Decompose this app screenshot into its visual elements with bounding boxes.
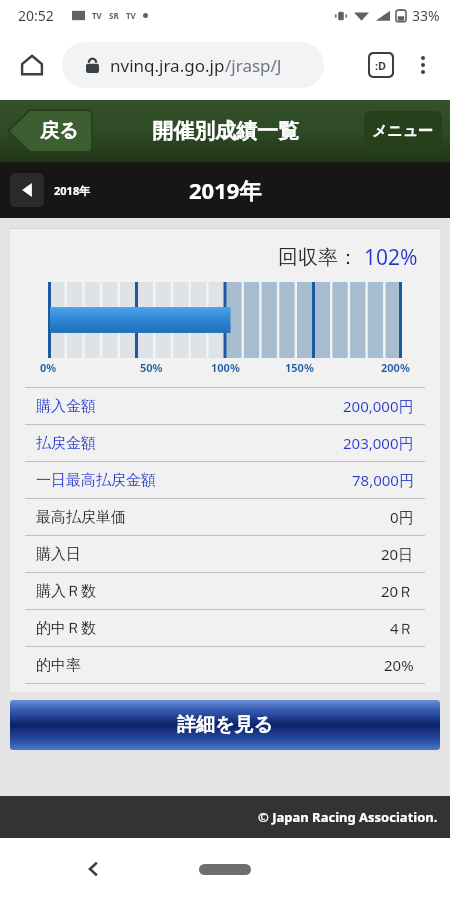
button[interactable]: Home xyxy=(199,864,251,875)
button[interactable]: nvinq.jra.go.jp xyxy=(62,42,324,88)
staticText: 2019年 xyxy=(189,175,262,205)
button[interactable]: 2018年 xyxy=(10,173,91,207)
staticText: 購入Ｒ数 xyxy=(36,582,96,601)
staticText: 20% xyxy=(384,655,414,675)
staticText: 払戻金額 xyxy=(36,434,96,453)
staticText: 150% xyxy=(285,360,314,375)
staticText: 200% xyxy=(381,360,410,375)
staticText: 2018年 xyxy=(54,183,91,198)
staticText: 78,000円 xyxy=(352,470,414,490)
staticText: メニュー xyxy=(372,122,434,141)
staticText: 200,000円 xyxy=(343,396,414,416)
staticText: :D xyxy=(375,58,387,73)
staticText: 33% xyxy=(412,6,440,25)
button[interactable]: 的中Ｒ数 xyxy=(10,610,440,646)
staticText: SR xyxy=(109,10,119,21)
staticText: 4Ｒ xyxy=(390,618,414,638)
staticText: 購入日 xyxy=(36,545,81,564)
staticText: 的中率 xyxy=(36,656,81,675)
button[interactable]: 戻る xyxy=(8,110,92,152)
staticText: 0円 xyxy=(390,507,414,527)
button[interactable]: More options xyxy=(404,46,442,84)
button[interactable]: メニュー xyxy=(364,111,442,151)
staticText: 回収率： xyxy=(278,245,358,270)
staticText: © Japan Racing Association. xyxy=(258,808,438,826)
button[interactable]: Back xyxy=(74,849,114,889)
staticText: 0% xyxy=(40,360,57,375)
staticText: nvinq.jra.go.jp xyxy=(110,54,225,77)
button[interactable]: 的中率 xyxy=(10,647,440,683)
staticText: 203,000円 xyxy=(343,433,414,453)
staticText: 一日最高払戻金額 xyxy=(36,471,156,490)
staticText: 戻る xyxy=(40,119,79,143)
button[interactable]: 払戻金額 xyxy=(10,425,440,461)
staticText: /jrasp/J xyxy=(225,54,282,77)
staticText: 開催別成績一覧 xyxy=(152,118,299,144)
button[interactable]: 詳細を見る xyxy=(10,700,440,750)
staticText: 102% xyxy=(364,243,418,272)
button[interactable]: 一日最高払戻金額 xyxy=(10,462,440,498)
staticText: 20Ｒ xyxy=(381,581,414,601)
staticText: 購入金額 xyxy=(36,397,96,416)
staticText: 50% xyxy=(140,360,163,375)
button[interactable]: 購入日 xyxy=(10,536,440,572)
button[interactable]: Home xyxy=(10,43,54,87)
staticText: 詳細を見る xyxy=(177,713,273,737)
staticText: TV xyxy=(126,10,136,21)
button[interactable]: 購入金額 xyxy=(10,388,440,424)
staticText: 20日 xyxy=(381,544,414,564)
button[interactable]: Emoji xyxy=(364,48,398,82)
staticText: 的中Ｒ数 xyxy=(36,619,96,638)
staticText: 20:52 xyxy=(18,6,54,25)
button[interactable]: 購入Ｒ数 xyxy=(10,573,440,609)
staticText: 最高払戻単価 xyxy=(36,508,126,527)
staticText: 100% xyxy=(211,360,240,375)
staticText: TV xyxy=(92,10,102,21)
button[interactable]: 最高払戻単価 xyxy=(10,499,440,535)
